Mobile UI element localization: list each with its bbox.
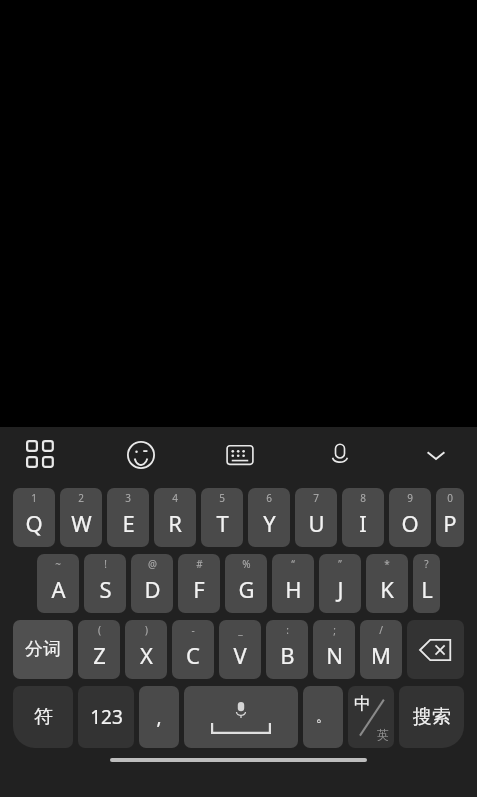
button[interactable]: 6 [248,488,290,547]
button[interactable]: % [225,554,267,613]
staticText: Z [93,640,106,670]
button[interactable]: ) [125,620,167,679]
staticText: / [379,623,383,637]
staticText: : [286,623,289,637]
staticText: C [186,640,200,670]
staticText: @ [148,557,157,571]
button[interactable]: # [178,554,220,613]
staticText: A [51,574,66,604]
staticText: ( [98,623,101,637]
button[interactable]: ” [319,554,361,613]
button[interactable]: 搜索 [399,686,464,748]
button[interactable]: 9 [389,488,431,547]
button[interactable]: 。 [303,686,343,748]
button[interactable]: Emoji [118,432,164,478]
button[interactable]: * [366,554,408,613]
button[interactable]: 123 [78,686,134,748]
staticText: D [144,574,161,604]
staticText: - [191,623,195,637]
staticText: S [99,574,112,604]
button[interactable]: ! [84,554,126,613]
staticText: 0 [447,491,453,505]
staticText: 3 [125,491,131,505]
button[interactable]: Backspace [407,620,464,679]
button[interactable]: 5 [201,488,243,547]
staticText: T [216,508,229,538]
staticText: 英 [377,727,389,742]
staticText: 分词 [25,638,61,661]
staticText: ? [424,557,429,571]
button[interactable]: - [172,620,214,679]
staticText: , [156,704,162,730]
staticText: 中 [354,693,371,714]
button[interactable]: 4 [154,488,196,547]
button[interactable]: 0 [436,488,464,547]
staticText: F [193,574,205,604]
staticText: 9 [407,491,413,505]
button[interactable]: @ [131,554,173,613]
staticText: 6 [266,491,272,505]
button[interactable]: ; [313,620,355,679]
staticText: 4 [172,491,178,505]
button[interactable]: / [360,620,402,679]
staticText: J [337,574,344,604]
staticText: L [421,574,433,604]
staticText: 搜索 [413,705,451,729]
button[interactable]: Space [184,686,298,748]
staticText: 1 [31,491,37,505]
button[interactable]: 1 [13,488,55,547]
staticText: 5 [219,491,225,505]
button[interactable]: 分词 [13,620,73,679]
button[interactable]: ~ [37,554,79,613]
staticText: 123 [90,704,123,730]
staticText: I [359,508,367,538]
staticText: G [238,574,255,604]
button[interactable]: 2 [60,488,102,547]
staticText: * [384,557,390,571]
staticText: E [122,508,135,538]
staticText: O [401,508,419,538]
staticText: 8 [360,491,366,505]
staticText: 。 [316,708,330,726]
staticText: X [140,640,153,670]
button[interactable]: ( [78,620,120,679]
staticText: P [443,508,457,538]
staticText: ” [338,557,342,571]
button[interactable]: , [139,686,179,748]
button[interactable]: 8 [342,488,384,547]
staticText: U [308,508,325,538]
staticText: 2 [78,491,84,505]
button[interactable]: Chinese English toggle [348,686,394,748]
button[interactable]: ? [413,554,440,613]
button[interactable]: 3 [107,488,149,547]
staticText: H [285,574,302,604]
staticText: V [233,640,247,670]
button[interactable]: : [266,620,308,679]
staticText: ~ [55,557,61,571]
staticText: ! [104,557,107,571]
staticText: W [71,508,92,538]
button[interactable]: Keyboard layout [217,432,263,478]
staticText: “ [291,557,295,571]
staticText: # [196,557,203,571]
staticText: Q [25,508,43,538]
staticText: Y [263,508,276,538]
button[interactable]: “ [272,554,314,613]
staticText: R [168,508,182,538]
staticText: % [242,557,251,571]
staticText: 7 [313,491,319,505]
staticText: N [326,640,343,670]
staticText: 符 [34,705,53,729]
button[interactable]: 符 [13,686,73,748]
button[interactable]: Voice input [317,432,363,478]
button[interactable]: _ [219,620,261,679]
staticText: ) [145,623,148,637]
staticText: ; [333,623,336,637]
staticText: K [380,574,394,604]
button[interactable]: Themes [18,432,64,478]
button[interactable]: 7 [295,488,337,547]
staticText: _ [238,623,243,637]
staticText: B [280,640,295,670]
staticText: M [371,640,391,670]
button[interactable]: Hide keyboard [413,432,459,478]
